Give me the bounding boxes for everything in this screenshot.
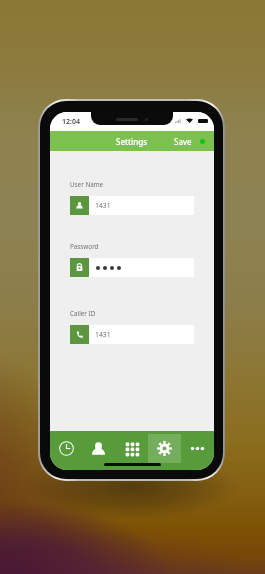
other: Connected: [200, 139, 205, 144]
staticText: 1431: [95, 330, 111, 339]
button[interactable]: Settings: [148, 434, 181, 463]
staticText: Caller ID: [70, 309, 96, 318]
button[interactable]: Save: [171, 133, 195, 150]
staticText: User Name: [70, 180, 104, 189]
button[interactable]: 1431: [70, 325, 194, 344]
staticText: Settings: [116, 136, 148, 147]
staticText: Save: [174, 136, 192, 147]
button[interactable]: More: [181, 434, 214, 463]
button[interactable]: 1431: [70, 196, 194, 215]
staticText: 12:04: [62, 117, 80, 127]
staticText: 1431: [95, 201, 111, 210]
button[interactable]: [70, 258, 194, 277]
button[interactable]: Recents: [50, 434, 82, 463]
button[interactable]: Keypad: [115, 434, 148, 463]
staticText: Password: [70, 242, 99, 251]
button[interactable]: Contacts: [82, 434, 115, 463]
